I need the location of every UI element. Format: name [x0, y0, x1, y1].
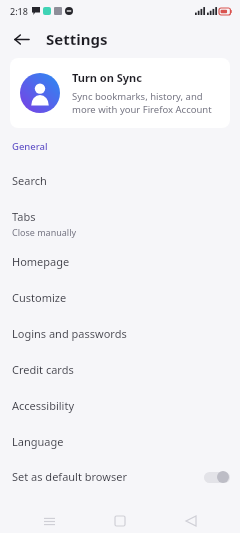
staticText: Accessibility	[12, 398, 75, 413]
button[interactable]: Credit cards	[0, 362, 240, 377]
button[interactable]: Accessibility	[0, 398, 240, 413]
button[interactable]: Back	[8, 26, 34, 52]
button[interactable]: Recents	[37, 509, 61, 533]
button[interactable]: Turn on Sync	[10, 58, 230, 128]
button[interactable]: Tabs	[0, 209, 240, 238]
staticText: Logins and passwords	[12, 326, 127, 341]
staticText: Customize	[12, 290, 67, 305]
staticText: Sync bookmarks, history, and more with y…	[72, 90, 220, 116]
staticText: Search	[12, 173, 47, 188]
staticText: Turn on Sync	[72, 70, 142, 85]
button[interactable]: Search	[0, 173, 240, 188]
button[interactable]: Set as default browser	[0, 469, 240, 484]
staticText: Close manually	[12, 226, 77, 238]
staticText: Set as default browser	[12, 469, 204, 484]
staticText: Tabs	[12, 209, 36, 224]
staticText: Settings	[46, 29, 108, 49]
staticText: Credit cards	[12, 362, 74, 377]
button[interactable]: Homepage	[0, 254, 240, 269]
button[interactable]: Logins and passwords	[0, 326, 240, 341]
staticText: General	[12, 140, 48, 153]
button[interactable]: Back	[179, 509, 203, 533]
button[interactable]: Customize	[0, 290, 240, 305]
staticText: 2:18	[10, 5, 28, 17]
button[interactable]: Language	[0, 434, 240, 449]
button[interactable]: Home	[108, 509, 132, 533]
staticText: Homepage	[12, 254, 70, 269]
staticText: Language	[12, 434, 64, 449]
